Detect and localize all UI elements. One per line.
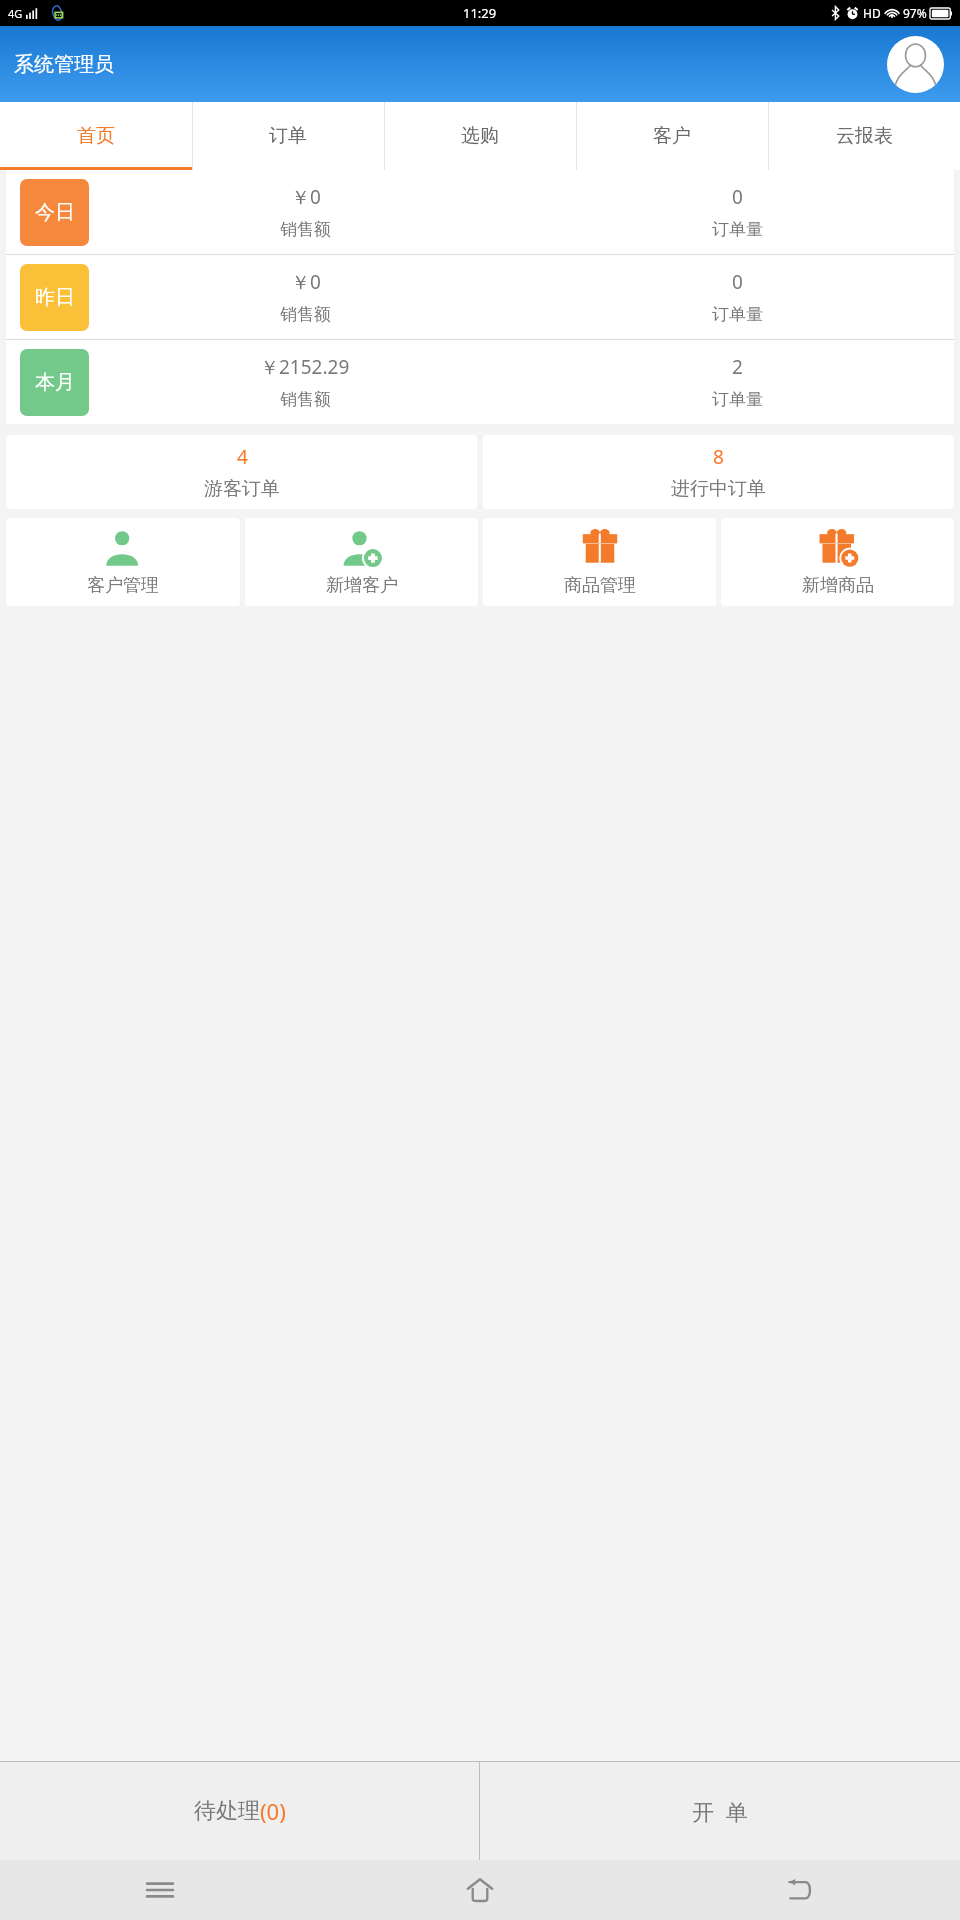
button[interactable]: 开 单 (480, 1762, 960, 1860)
staticText: 2 (732, 354, 743, 380)
staticText: 新增客户 (326, 574, 398, 597)
button[interactable]: 8 (483, 435, 954, 509)
staticText: 销售额 (280, 389, 331, 410)
staticText: 本月 (35, 370, 75, 395)
staticText: 待处理 (194, 1797, 260, 1825)
staticText: 游客订单 (204, 477, 280, 501)
staticText: ￥0 (291, 184, 321, 210)
staticText: 订单量 (712, 304, 763, 325)
button[interactable]: 4 (6, 435, 477, 509)
staticText: 4G (8, 6, 23, 21)
button[interactable]: 新增商品 (721, 518, 954, 606)
staticText: 11:29 (463, 4, 497, 22)
staticText: 系统管理员 (14, 52, 114, 77)
staticText: 今日 (35, 200, 75, 225)
staticText: 销售额 (280, 304, 331, 325)
button[interactable]: 本月 (6, 340, 954, 424)
button[interactable]: 客户 (576, 102, 768, 170)
staticText: 订单量 (712, 389, 763, 410)
button[interactable]: 商品管理 (483, 518, 716, 606)
button[interactable]: 今日 (6, 170, 954, 254)
button[interactable]: Menu (0, 1860, 320, 1920)
staticText: 4 (237, 444, 248, 470)
button[interactable]: 客户管理 (6, 518, 240, 606)
staticText: 首页 (77, 124, 115, 148)
staticText: 云报表 (836, 124, 893, 148)
button[interactable]: Home (320, 1860, 640, 1920)
staticText: 97% (903, 5, 927, 21)
staticText: 开 单 (692, 1796, 748, 1826)
button[interactable]: 订单 (192, 102, 384, 170)
staticText: 客户管理 (87, 574, 159, 597)
button[interactable]: 首页 (0, 102, 192, 170)
button[interactable]: 昨日 (6, 255, 954, 339)
staticText: HD (863, 5, 881, 21)
button[interactable]: Back (640, 1860, 960, 1920)
button[interactable]: 云报表 (768, 102, 960, 170)
staticText: 商品管理 (564, 574, 636, 597)
staticText: 选购 (461, 124, 499, 148)
staticText: 销售额 (280, 219, 331, 240)
button[interactable]: Profile (887, 36, 944, 93)
staticText: 客户 (653, 124, 691, 148)
staticText: 8 (713, 444, 724, 470)
button[interactable]: 新增客户 (245, 518, 478, 606)
staticText: (0) (260, 1796, 286, 1826)
staticText: ￥2152.29 (260, 354, 350, 380)
staticText: 0 (732, 184, 743, 210)
button[interactable]: 待处理 (0, 1762, 479, 1860)
staticText: ￥0 (291, 269, 321, 295)
button[interactable]: 选购 (384, 102, 576, 170)
staticText: 进行中订单 (671, 477, 766, 501)
staticText: 订单 (269, 124, 307, 148)
staticText: 新增商品 (802, 574, 874, 597)
staticText: 0 (732, 269, 743, 295)
staticText: 昨日 (35, 285, 75, 310)
staticText: 订单量 (712, 219, 763, 240)
